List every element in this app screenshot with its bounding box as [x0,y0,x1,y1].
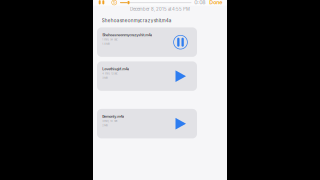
staticText: 3 MB [102,76,108,79]
staticText: 4 min, 12 sec [102,72,117,75]
staticText: 1 min, 54 sec [102,38,117,41]
staticText: 3 min, 10 sec [102,120,117,122]
button[interactable]: Skip back 15 seconds [112,0,117,5]
staticText: 1.8 MB [102,42,110,45]
staticText: 0:08 [194,0,205,6]
staticText: Lovethisgirl.m4a [102,67,129,71]
staticText: Shehoasneonmycrazyshit.m4a [102,33,152,37]
staticText: Done [209,0,222,6]
button[interactable]: Lovethisgirl.m4a [97,61,197,91]
staticText: December 8, 2015 at 4:55 PM [130,6,190,12]
staticText: Shehoasneonmycrazyshit.m4a [102,18,172,23]
staticText: 2 MB [102,124,108,127]
staticText: 15 [113,0,116,4]
staticText: Bemonly.m4a [102,114,124,119]
button[interactable]: Bemonly.m4a [97,109,197,138]
button[interactable]: Shehoasneonmycrazyshit.m4a [97,27,197,57]
button[interactable]: Pause [99,0,104,4]
button[interactable]: Done [209,0,222,4]
